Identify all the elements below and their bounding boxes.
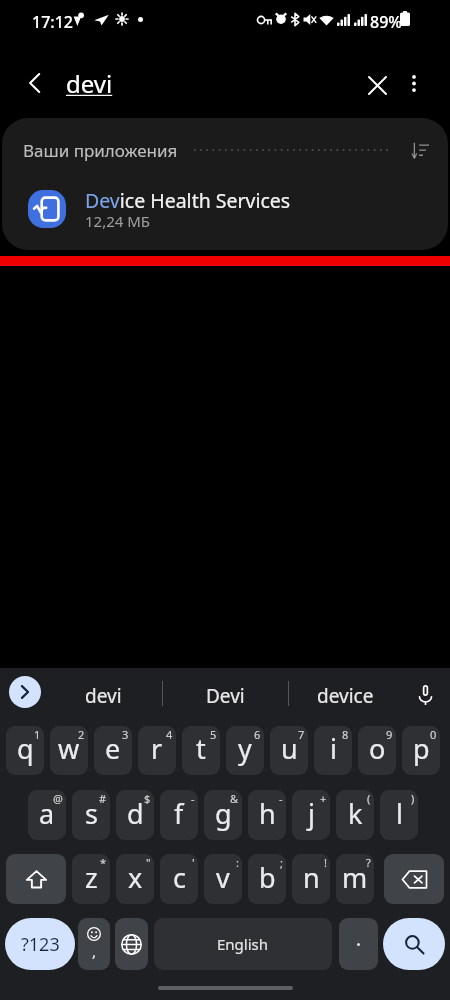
button[interactable]: k (336, 790, 374, 840)
button[interactable]: g (204, 790, 242, 840)
button[interactable]: q (6, 726, 44, 775)
staticText: i (330, 730, 337, 767)
button[interactable]: x (116, 854, 154, 904)
staticText: g (215, 795, 232, 832)
staticText: 12,24 МБ (85, 211, 151, 231)
staticText: 8 (342, 727, 349, 742)
button[interactable]: Emoji (78, 918, 110, 970)
staticText: f (174, 795, 184, 832)
button[interactable]: Expand toolbar (9, 676, 41, 708)
staticText: y (238, 730, 252, 767)
button[interactable]: h (248, 790, 286, 840)
button[interactable]: Voice input (408, 678, 442, 712)
button[interactable]: a (28, 790, 66, 840)
button[interactable]: u (270, 726, 308, 775)
button[interactable]: Search (383, 918, 445, 970)
button[interactable]: j (292, 790, 330, 840)
button[interactable]: devi (46, 669, 160, 723)
staticText: ; (280, 855, 283, 870)
staticText: Devi (206, 683, 245, 709)
staticText: device (317, 683, 374, 709)
staticText: x (128, 859, 143, 896)
button[interactable]: d (116, 790, 154, 840)
staticText: 89% (370, 11, 402, 33)
staticText: Device Health Services (85, 187, 291, 214)
button[interactable]: Sort (406, 136, 434, 164)
button[interactable]: Back (14, 63, 54, 103)
staticText: e (105, 730, 121, 767)
button[interactable]: Switch language (115, 918, 148, 970)
button[interactable]: Device Health Services (2, 172, 448, 246)
button[interactable]: device (288, 669, 402, 723)
button[interactable]: o (358, 726, 396, 775)
staticText: 1 (34, 727, 41, 742)
staticText: z (85, 859, 98, 896)
staticText: * (100, 855, 107, 870)
button[interactable]: l (380, 790, 418, 840)
staticText: u (281, 730, 298, 767)
staticText: o (369, 730, 386, 767)
staticText: d (127, 795, 144, 832)
staticText: 0 (430, 727, 437, 742)
staticText: ?123 (21, 932, 60, 957)
staticText: q (17, 730, 34, 767)
staticText: 9 (386, 727, 393, 742)
staticText: b (259, 859, 276, 896)
button[interactable]: n (292, 854, 330, 904)
staticText: s (85, 795, 98, 832)
button[interactable]: f (160, 790, 198, 840)
button[interactable]: t (182, 726, 220, 775)
staticText: l (396, 795, 403, 832)
staticText: v (216, 859, 230, 896)
staticText: - (279, 791, 283, 806)
staticText: : (236, 855, 239, 870)
button[interactable]: Devi (168, 669, 282, 723)
staticText: j (308, 795, 315, 832)
button[interactable]: b (248, 854, 286, 904)
staticText: ) (411, 791, 415, 806)
staticText: 4 (166, 727, 173, 742)
staticText: 7 (298, 727, 305, 742)
button[interactable]: Clear search (357, 65, 397, 105)
staticText: & (230, 791, 239, 806)
staticText: ! (324, 855, 327, 870)
staticText: k (348, 795, 363, 832)
button[interactable]: Shift (6, 854, 66, 904)
button[interactable]: More options (396, 65, 432, 101)
staticText: 17:12 (32, 11, 73, 33)
staticText: 6 (254, 727, 261, 742)
staticText: Ваши приложения (23, 139, 178, 162)
button[interactable]: p (402, 726, 440, 775)
button[interactable]: s (72, 790, 110, 840)
button[interactable]: c (160, 854, 198, 904)
staticText: , (92, 941, 97, 961)
button[interactable]: m (336, 854, 374, 904)
button[interactable]: e (94, 726, 132, 775)
staticText: n (303, 859, 320, 896)
button[interactable]: z (72, 854, 110, 904)
button[interactable]: i (314, 726, 352, 775)
button[interactable]: r (138, 726, 176, 775)
button[interactable]: Period (339, 918, 378, 970)
staticText: r (151, 730, 163, 767)
staticText: w (58, 730, 80, 767)
staticText: ( (367, 791, 371, 806)
staticText: English (217, 934, 269, 954)
button[interactable]: Backspace (384, 854, 444, 904)
staticText: c (173, 859, 186, 896)
button[interactable]: v (204, 854, 242, 904)
button[interactable]: w (50, 726, 88, 775)
button[interactable]: English (154, 918, 332, 970)
staticText: # (99, 791, 107, 806)
staticText: @ (53, 791, 63, 806)
staticText: t (196, 730, 206, 767)
staticText: - (191, 791, 195, 806)
staticText: devi (66, 67, 113, 100)
staticText: 3 (122, 727, 129, 742)
staticText: ' (192, 855, 195, 870)
button[interactable]: ?123 (5, 918, 75, 970)
staticText: 5 (210, 727, 217, 742)
staticText: ? (366, 855, 371, 870)
button[interactable]: y (226, 726, 264, 775)
staticText: p (413, 730, 430, 767)
